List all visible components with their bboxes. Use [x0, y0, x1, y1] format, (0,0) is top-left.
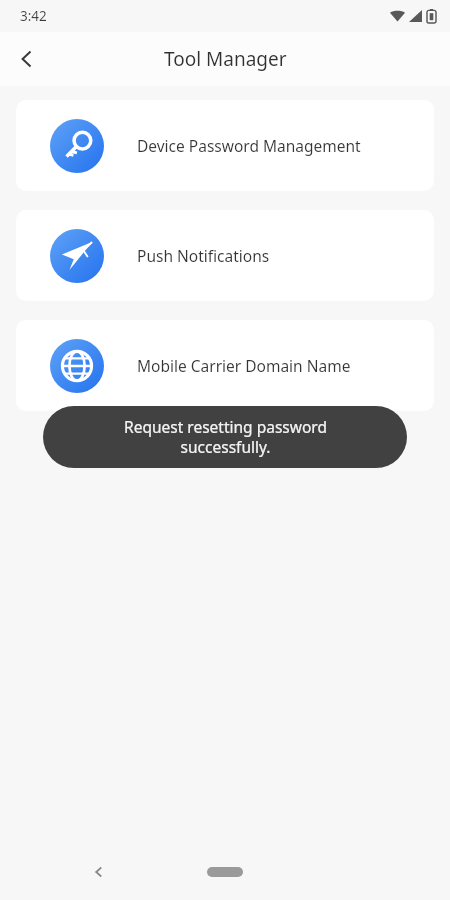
staticText: 3:42 — [20, 7, 47, 25]
button[interactable]: Mobile Carrier Domain Name — [16, 320, 434, 411]
staticText: Push Notifications — [137, 245, 270, 266]
staticText: Mobile Carrier Domain Name — [137, 355, 351, 376]
button[interactable]: Back — [0, 32, 54, 86]
button[interactable]: Back — [77, 850, 121, 894]
button[interactable]: Device Password Management — [16, 100, 434, 191]
staticText: Device Password Management — [137, 135, 361, 156]
staticText: Tool Manager — [164, 46, 287, 72]
button[interactable]: Home — [199, 857, 251, 887]
button[interactable]: Push Notifications — [16, 210, 434, 301]
staticText: Request resetting password successfully. — [124, 416, 327, 458]
